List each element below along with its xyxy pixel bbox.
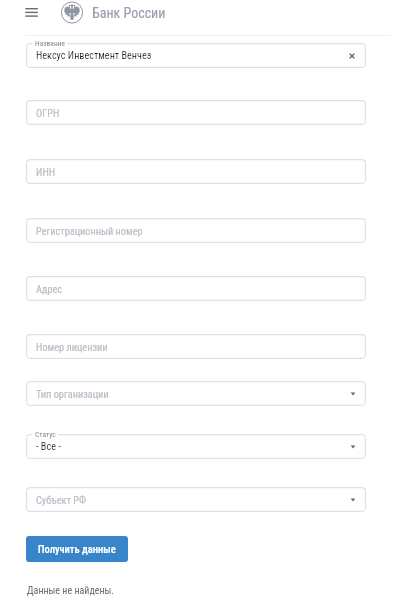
button[interactable]: Адрес	[26, 276, 366, 301]
button[interactable]: Получить данные	[26, 536, 128, 562]
staticText: Получить данные	[38, 543, 116, 555]
button[interactable]: Open list	[350, 391, 356, 397]
button[interactable]: Номер лицензии	[26, 334, 366, 359]
button[interactable]: Регистрационный номер	[26, 218, 366, 243]
button[interactable]: - Все -	[26, 434, 366, 459]
staticText: Нексус Инвестмент Венчез	[36, 50, 152, 62]
staticText: ОГРН	[36, 107, 60, 119]
button[interactable]: Open list	[350, 497, 356, 503]
staticText: Название	[35, 39, 66, 48]
button[interactable]: Нексус Инвестмент Венчез	[26, 43, 366, 68]
staticText: Адрес	[36, 283, 63, 295]
staticText: Регистрационный номер	[36, 225, 143, 237]
button[interactable]: Open list	[350, 444, 356, 450]
button[interactable]: Тип организации	[26, 381, 366, 406]
staticText: ИНН	[36, 166, 56, 178]
staticText: Данные не найдены.	[27, 585, 114, 597]
staticText: Субъект РФ	[36, 494, 86, 506]
button[interactable]: Субъект РФ	[26, 487, 366, 512]
button[interactable]: ИНН	[26, 159, 366, 184]
button[interactable]: ОГРН	[26, 100, 366, 125]
staticText: - Все -	[36, 441, 61, 453]
staticText: Банк России	[92, 5, 166, 21]
staticText: Тип организации	[36, 388, 109, 400]
staticText: Статус	[35, 430, 56, 439]
button[interactable]: Menu	[19, 0, 44, 25]
button[interactable]: Clear	[348, 52, 356, 60]
staticText: Номер лицензии	[36, 341, 108, 353]
button[interactable]: Банк России	[60, 1, 166, 24]
